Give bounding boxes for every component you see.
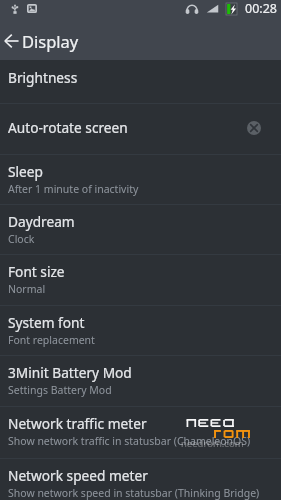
staticText: After 1 minute of inactivity: [8, 182, 139, 196]
button[interactable]: Sleep: [0, 154, 281, 204]
button[interactable]: Font size: [0, 254, 281, 305]
button[interactable]: Back: [0, 25, 22, 57]
staticText: Show network speed in statusbar (Thinkin…: [8, 486, 260, 500]
button[interactable]: Network speed meter: [0, 458, 281, 500]
button[interactable]: Auto-rotate screen: [0, 103, 281, 154]
button[interactable]: Daydream: [0, 204, 281, 254]
staticText: Auto-rotate screen: [8, 118, 128, 137]
staticText: Network speed meter: [8, 466, 148, 485]
staticText: Sleep: [8, 162, 43, 181]
staticText: Show network traffic in statusbar (Chame…: [8, 434, 251, 448]
button[interactable]: System font: [0, 305, 281, 355]
button[interactable]: 3Minit Battery Mod: [0, 355, 281, 406]
button[interactable]: Brightness: [0, 60, 281, 103]
staticText: Brightness: [8, 68, 78, 87]
staticText: Font size: [8, 262, 65, 281]
button[interactable]: Auto-rotate off: [244, 118, 264, 138]
staticText: needrom.com: [181, 437, 244, 450]
staticText: Settings Battery Mod: [8, 383, 112, 397]
staticText: Normal: [8, 282, 46, 296]
staticText: 00:28: [245, 0, 277, 17]
staticText: Font replacement: [8, 333, 95, 347]
staticText: Daydream: [8, 212, 75, 231]
button[interactable]: Network traffic meter: [0, 406, 281, 458]
staticText: 3Minit Battery Mod: [8, 363, 132, 382]
staticText: Clock: [8, 232, 35, 246]
staticText: Network traffic meter: [8, 414, 147, 433]
staticText: System font: [8, 313, 85, 332]
staticText: Display: [22, 30, 79, 52]
